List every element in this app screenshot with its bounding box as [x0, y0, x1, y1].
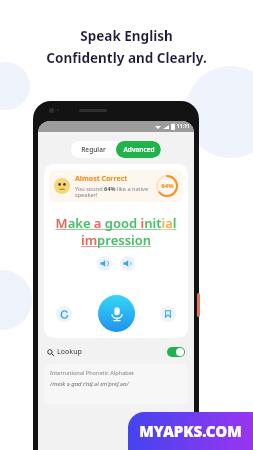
staticText: Confidently and Clearly.: [46, 49, 207, 67]
button[interactable]: Listen again: [56, 306, 72, 322]
staticText: Speak English: [80, 27, 173, 45]
staticText: Regular: [81, 145, 106, 154]
staticText: Almost Correct: [75, 174, 128, 184]
staticText: 64%: [161, 182, 174, 190]
staticText: Advanced: [123, 145, 155, 154]
button[interactable]: Record: [98, 295, 135, 332]
button[interactable]: Play slow audio: [120, 256, 135, 271]
button[interactable]: Lookup: [47, 345, 185, 359]
button[interactable]: Regular: [71, 141, 116, 158]
staticText: International Phonetic Alphabet: [50, 369, 134, 377]
staticText: You sound 64% like a native speaker!: [75, 185, 152, 199]
button[interactable]: Bookmark: [160, 306, 176, 322]
button[interactable]: Lookup toggle: [167, 347, 185, 357]
staticText: MYAPKS.COM: [139, 421, 242, 441]
staticText: /meɪk ə ɡʊd ɪˈnɪʃ.əl ɪmˈpreʃ.ən/: [50, 380, 129, 388]
staticText: Make a good initial impression: [54, 214, 178, 249]
staticText: Lookup: [57, 347, 82, 357]
button[interactable]: Advanced: [116, 141, 161, 158]
staticText: 11:11: [177, 123, 190, 130]
button[interactable]: Play audio: [97, 256, 112, 271]
